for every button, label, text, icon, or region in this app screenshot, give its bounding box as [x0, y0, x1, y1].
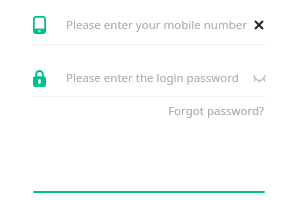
staticText: Forgot password?	[168, 103, 264, 119]
staticText: Please enter the login password	[66, 70, 239, 86]
button[interactable]: Forgot password?	[166, 101, 266, 121]
other: Password	[33, 69, 46, 87]
button[interactable]: Show password	[252, 71, 266, 85]
staticText: Please enter your mobile number	[66, 17, 247, 33]
button[interactable]: Clear	[252, 18, 266, 32]
other: Mobile number	[33, 16, 46, 34]
